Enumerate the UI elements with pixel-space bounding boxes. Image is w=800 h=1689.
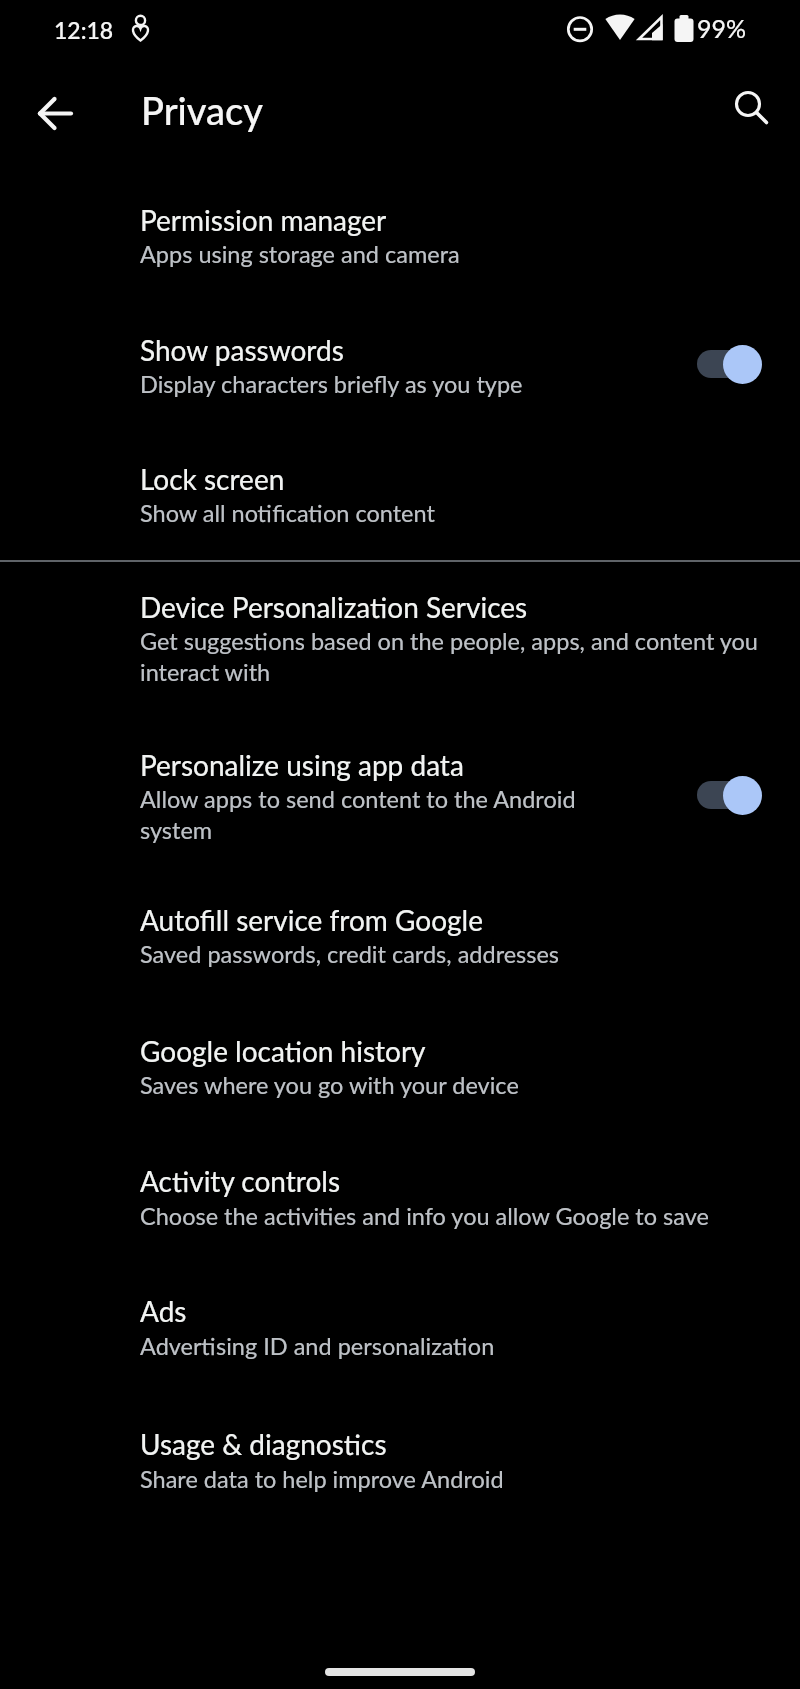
- button[interactable]: Device Personalization Services: [0, 562, 800, 719]
- button[interactable]: Google location history: [0, 1005, 800, 1135]
- button[interactable]: Ads: [0, 1265, 800, 1398]
- staticText: Lock screen: [140, 462, 285, 496]
- staticText: Show all notification content: [140, 499, 435, 527]
- button[interactable]: [28, 85, 84, 141]
- staticText: Display characters briefly as you type: [140, 370, 523, 398]
- staticText: Usage & diagnostics: [140, 1427, 387, 1461]
- button[interactable]: [697, 350, 759, 378]
- button[interactable]: [697, 781, 759, 809]
- button[interactable]: Usage & diagnostics: [0, 1398, 800, 1562]
- staticText: Apps using storage and camera: [140, 240, 460, 268]
- staticText: Activity controls: [140, 1164, 341, 1198]
- staticText: Choose the activities and info you allow…: [140, 1202, 709, 1230]
- staticText: Privacy: [141, 87, 263, 133]
- button[interactable]: Permission manager: [0, 172, 800, 302]
- button[interactable]: Autofill service from Google: [0, 874, 800, 1005]
- staticText: Autofill service from Google: [140, 903, 483, 937]
- staticText: Permission manager: [140, 203, 387, 237]
- staticText: 99%: [697, 13, 747, 43]
- button[interactable]: [725, 81, 781, 137]
- staticText: Show passwords: [140, 333, 344, 367]
- staticText: 12:18: [54, 16, 114, 44]
- staticText: Device Personalization Services: [140, 590, 528, 624]
- staticText: Allow apps to send content to the Androi…: [140, 785, 576, 845]
- staticText: Ads: [140, 1294, 187, 1328]
- button[interactable]: Lock screen: [0, 433, 800, 559]
- button[interactable]: Personalize using app data: [0, 719, 800, 874]
- staticText: Saved passwords, credit cards, addresses: [140, 940, 560, 968]
- staticText: Share data to help improve Android: [140, 1465, 504, 1493]
- button[interactable]: Activity controls: [0, 1135, 800, 1265]
- staticText: Get suggestions based on the people, app…: [140, 627, 758, 687]
- button[interactable]: Show passwords: [0, 302, 800, 433]
- staticText: Personalize using app data: [140, 748, 464, 782]
- staticText: Saves where you go with your device: [140, 1071, 519, 1099]
- staticText: Advertising ID and personalization: [140, 1332, 495, 1360]
- staticText: Google location history: [140, 1034, 426, 1068]
